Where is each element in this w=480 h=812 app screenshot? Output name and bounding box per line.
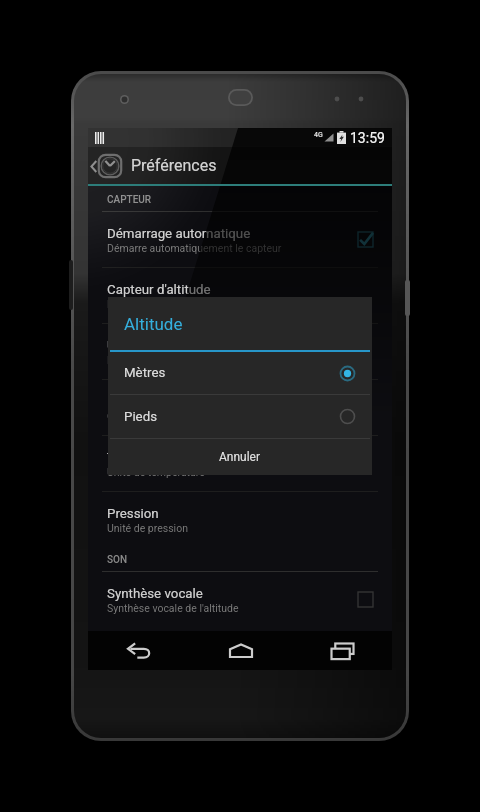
button[interactable]: Annuler (108, 439, 372, 475)
staticText: Température (107, 450, 183, 466)
staticText: Altitude (124, 314, 183, 334)
button[interactable]: Démarrage automatique (88, 212, 392, 267)
staticText: Calibrer le capteur (107, 410, 192, 422)
staticText: Annuler (219, 450, 261, 464)
button[interactable]: Recent apps (291, 631, 392, 670)
staticText: Capteur d'altitude (107, 282, 211, 298)
button[interactable]: Back (88, 631, 190, 670)
staticText: Unité de pression (107, 338, 210, 354)
staticText: Pieds (124, 409, 339, 425)
button[interactable]: Home (190, 631, 291, 670)
staticText: Unité de pression (107, 522, 188, 534)
staticText: Pression (107, 506, 159, 522)
button[interactable]: Pression (88, 492, 392, 547)
staticText: Démarre automatiquement le capteur (107, 242, 282, 254)
staticText: Unité de température (107, 466, 205, 478)
staticText: Démarrage automatique (107, 226, 251, 242)
button[interactable]: Température (88, 436, 392, 491)
button[interactable]: Unité de pression (88, 324, 392, 379)
staticText: 13:59 (350, 130, 385, 146)
staticText: SON (107, 554, 128, 566)
staticText: Synthèse vocale (107, 586, 203, 602)
staticText: Mètres (107, 298, 140, 310)
button[interactable]: Pieds (108, 395, 372, 438)
staticText: 4G (314, 131, 323, 139)
staticText: Préférences (131, 156, 217, 175)
button[interactable]: Mètres (108, 352, 372, 394)
button[interactable]: Synthèse vocale (88, 572, 392, 627)
button[interactable]: Navigate up (88, 153, 126, 179)
button[interactable]: Étalonnage (88, 380, 392, 435)
staticText: Mètres (124, 365, 339, 381)
staticText: Synthèse vocale de l'altitude (107, 602, 239, 614)
staticText: Étalonnage (107, 394, 174, 410)
staticText: CAPTEUR (107, 194, 152, 206)
button[interactable]: Capteur d'altitude (88, 268, 392, 323)
